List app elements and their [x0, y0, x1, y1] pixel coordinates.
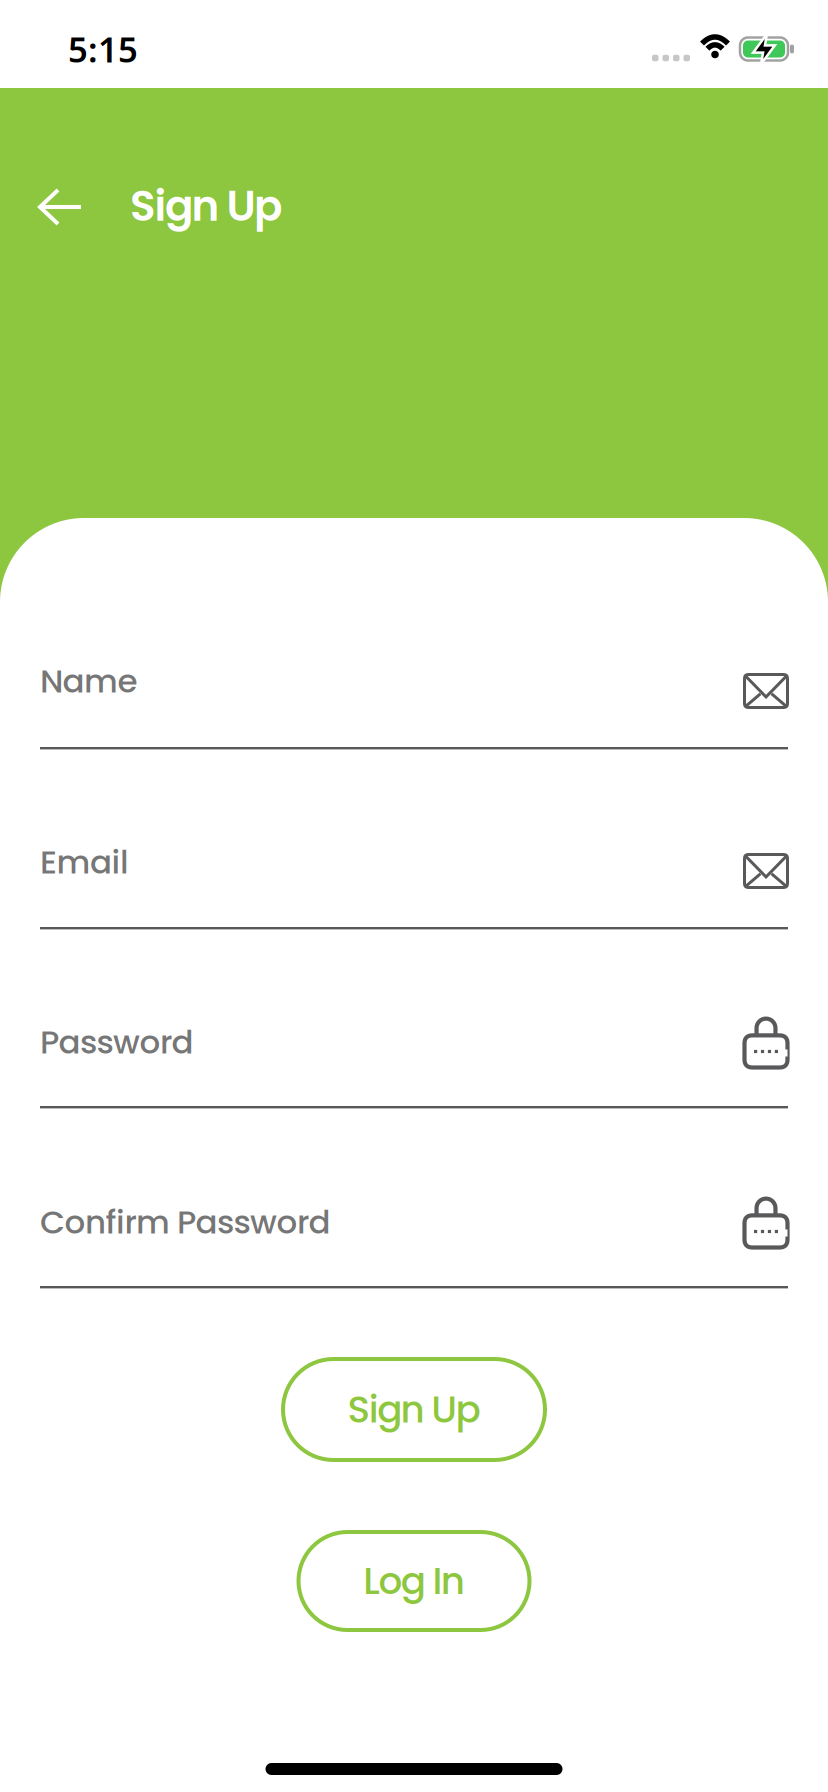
button[interactable]: Back	[28, 178, 93, 236]
staticText: 5:15	[68, 26, 138, 72]
staticText: Name	[40, 658, 137, 704]
staticText: Sign Up	[130, 177, 282, 235]
staticText: Confirm Password	[40, 1199, 330, 1245]
staticText: Log In	[363, 1555, 465, 1607]
button[interactable]: Email	[40, 814, 788, 929]
staticText: Password	[40, 1019, 193, 1065]
button[interactable]: Confirm Password	[40, 1174, 788, 1288]
button[interactable]: Name	[40, 633, 788, 749]
button[interactable]: Log In	[298, 1532, 529, 1630]
staticText: Sign Up	[347, 1383, 481, 1436]
button[interactable]: Sign Up	[283, 1359, 545, 1460]
button[interactable]: Password	[40, 994, 788, 1108]
staticText: Email	[40, 839, 129, 885]
